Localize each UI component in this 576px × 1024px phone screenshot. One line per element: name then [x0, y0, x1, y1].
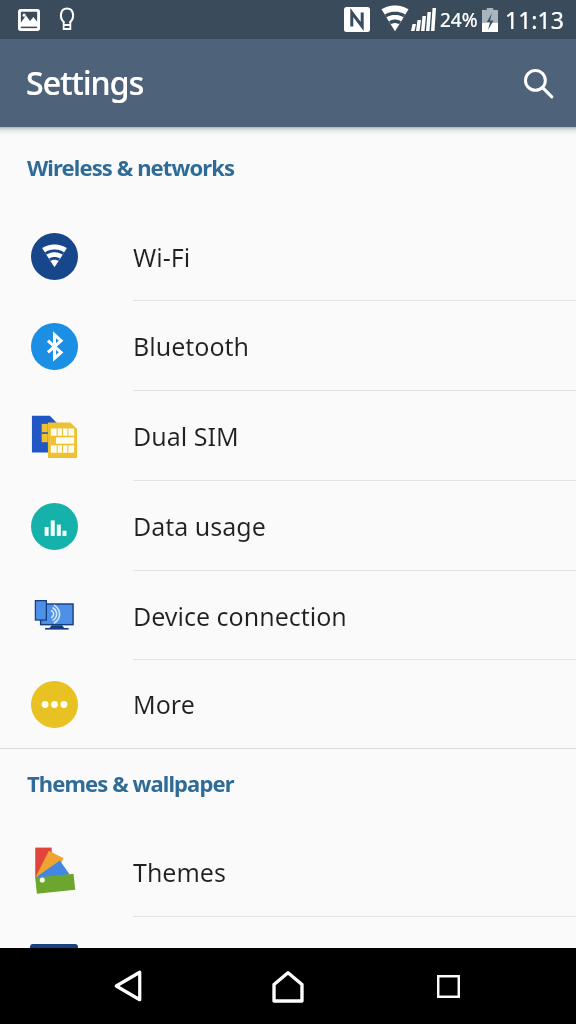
- staticText: 24%: [440, 7, 478, 33]
- staticText: Bluetooth: [133, 329, 250, 363]
- staticText: Themes & wallpaper: [27, 768, 234, 798]
- button[interactable]: More: [0, 660, 576, 748]
- button[interactable]: Wi-Fi: [0, 212, 576, 301]
- staticText: Wireless & networks: [27, 152, 235, 182]
- staticText: Settings: [26, 61, 144, 105]
- button[interactable]: Dual SIM: [0, 391, 576, 481]
- staticText: Wi-Fi: [133, 240, 191, 274]
- staticText: Device connection: [133, 599, 347, 633]
- button[interactable]: Home: [247, 948, 329, 1024]
- staticText: Dual SIM: [133, 419, 239, 453]
- button[interactable]: Bluetooth: [0, 301, 576, 391]
- button[interactable]: Data usage: [0, 481, 576, 571]
- button[interactable]: Themes: [0, 827, 576, 917]
- staticText: 11:13: [505, 4, 564, 35]
- button[interactable]: Search: [511, 56, 565, 110]
- button[interactable]: Device connection: [0, 571, 576, 660]
- button[interactable]: Recent apps: [407, 948, 489, 1024]
- staticText: Themes: [133, 855, 226, 889]
- button[interactable]: Back: [87, 948, 169, 1024]
- staticText: More: [133, 687, 195, 721]
- staticText: Data usage: [133, 509, 266, 543]
